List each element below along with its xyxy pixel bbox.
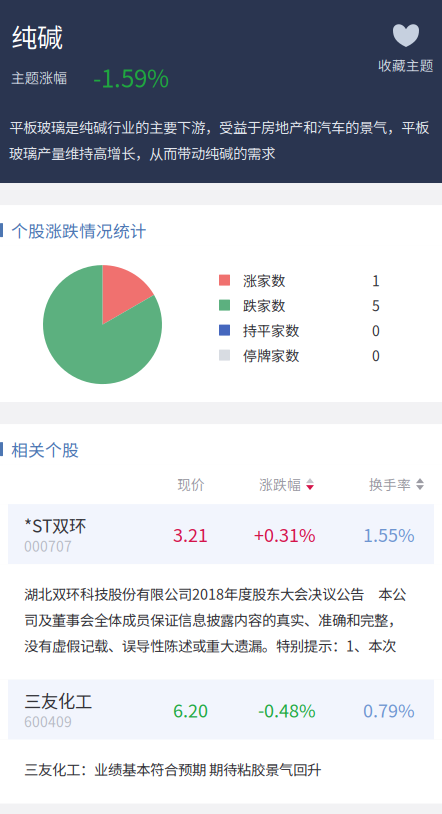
staticText: 平板玻璃是纯碱行业的主要下游，受益于房地产和汽车的景气，平板玻璃产量维持高增长，… [9, 116, 429, 163]
staticText: 1 [372, 270, 380, 290]
staticText: 涨家数 [243, 270, 285, 290]
staticText: 0.79% [363, 697, 415, 723]
staticText: -1.59% [93, 60, 169, 94]
staticText: 5 [372, 295, 380, 315]
staticText: 三友化工 [24, 688, 92, 713]
staticText: 0 [372, 345, 380, 365]
staticText: 涨跌幅 [259, 474, 301, 494]
staticText: 个股涨跌情况统计 [11, 218, 147, 242]
staticText: +0.31% [254, 521, 316, 547]
button[interactable]: *ST双环 [0, 504, 442, 564]
staticText: 1.55% [363, 521, 415, 547]
staticText: 跌家数 [243, 295, 285, 315]
button[interactable]: 收藏主题 [378, 0, 442, 75]
staticText: -0.48% [258, 697, 316, 723]
staticText: 6.20 [173, 697, 208, 723]
staticText: 三友化工：业绩基本符合预期 期待粘胶景气回升 [24, 759, 321, 780]
staticText: *ST双环 [24, 512, 86, 537]
staticText: 湖北双环科技股份有限公司2018年度股东大会决议公告 本公司及董事会全体成员保证… [24, 583, 406, 656]
staticText: 收藏主题 [378, 55, 434, 75]
staticText: 600409 [24, 711, 72, 731]
staticText: 3.21 [173, 521, 208, 547]
staticText: 换手率 [369, 474, 411, 494]
staticText: 现价 [177, 474, 205, 494]
staticText: 相关个股 [11, 437, 79, 461]
staticText: 000707 [24, 535, 72, 556]
staticText: 持平家数 [243, 320, 299, 340]
staticText: 停牌家数 [243, 345, 299, 365]
button[interactable]: 三友化工：业绩基本符合预期 期待粘胶景气回升 [0, 740, 442, 804]
staticText: 纯碱 [11, 17, 63, 55]
staticText: 0 [372, 320, 380, 340]
button[interactable]: 湖北双环科技股份有限公司2018年度股东大会决议公告 本公司及董事会全体成员保证… [0, 564, 442, 680]
staticText: 主题涨幅 [11, 67, 67, 87]
button[interactable]: 三友化工 [0, 680, 442, 740]
